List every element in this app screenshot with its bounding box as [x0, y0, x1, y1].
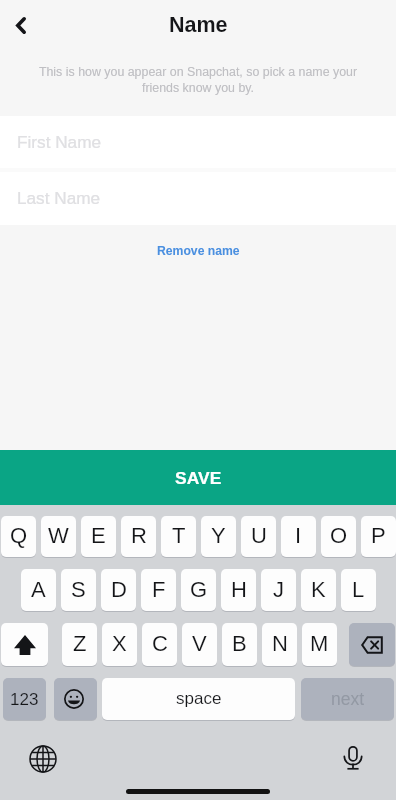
staticText: P — [371, 523, 386, 548]
staticText: J — [273, 577, 284, 602]
staticText: E — [91, 523, 106, 548]
button[interactable]: O — [321, 516, 356, 557]
button[interactable]: next — [301, 678, 394, 720]
staticText: H — [231, 577, 247, 602]
staticText: N — [272, 631, 288, 656]
button[interactable]: M — [302, 623, 337, 666]
button[interactable]: SAVE — [0, 450, 396, 505]
staticText: K — [311, 577, 326, 602]
button[interactable]: N — [262, 623, 297, 666]
button[interactable]: I — [281, 516, 316, 557]
staticText: space — [176, 689, 222, 708]
staticText: Y — [211, 523, 226, 548]
button[interactable]: R — [121, 516, 156, 557]
button[interactable]: Remove name — [157, 244, 240, 258]
button[interactable]: X — [102, 623, 137, 666]
button[interactable]: 123 — [3, 678, 46, 720]
button[interactable]: P — [361, 516, 396, 557]
button[interactable]: H — [221, 569, 256, 611]
staticText: A — [31, 577, 46, 602]
button[interactable]: Emoji — [54, 678, 97, 720]
staticText: M — [310, 631, 329, 656]
button[interactable]: Q — [1, 516, 36, 557]
button[interactable]: C — [142, 623, 177, 666]
staticText: T — [172, 523, 186, 548]
staticText: G — [190, 577, 208, 602]
staticText: F — [152, 577, 166, 602]
staticText: I — [295, 523, 302, 548]
button[interactable]: S — [61, 569, 96, 611]
button[interactable]: F — [141, 569, 176, 611]
staticText: Z — [73, 631, 87, 656]
button[interactable]: Back — [0, 3, 43, 47]
button[interactable]: L — [341, 569, 376, 611]
button[interactable]: Z — [62, 623, 97, 666]
staticText: V — [192, 631, 207, 656]
staticText: First Name — [17, 132, 102, 151]
button[interactable]: Backspace — [349, 623, 395, 666]
staticText: Last Name — [17, 188, 101, 207]
staticText: This is how you appear on Snapchat, so p… — [33, 65, 363, 94]
button[interactable]: E — [81, 516, 116, 557]
staticText: SAVE — [175, 468, 222, 487]
button[interactable]: space — [102, 678, 295, 720]
button[interactable]: B — [222, 623, 257, 666]
button[interactable]: A — [21, 569, 56, 611]
button[interactable]: Change keyboard — [26, 742, 60, 776]
button[interactable]: Dictation — [336, 741, 370, 775]
button[interactable]: J — [261, 569, 296, 611]
staticText: Name — [169, 13, 228, 37]
button[interactable]: Last Name — [0, 172, 396, 225]
staticText: B — [232, 631, 247, 656]
staticText: next — [331, 689, 365, 709]
staticText: 123 — [10, 690, 39, 709]
button[interactable]: Shift — [1, 623, 48, 666]
staticText: U — [251, 523, 267, 548]
staticText: L — [352, 577, 365, 602]
staticText: X — [112, 631, 127, 656]
button[interactable]: G — [181, 569, 216, 611]
button[interactable]: First Name — [0, 116, 396, 168]
staticText: W — [48, 523, 69, 548]
button[interactable]: W — [41, 516, 76, 557]
button[interactable]: D — [101, 569, 136, 611]
staticText: O — [330, 523, 348, 548]
button[interactable]: T — [161, 516, 196, 557]
staticText: Q — [10, 523, 28, 548]
button[interactable]: U — [241, 516, 276, 557]
staticText: Remove name — [157, 244, 240, 258]
button[interactable]: Y — [201, 516, 236, 557]
staticText: R — [131, 523, 147, 548]
button[interactable]: V — [182, 623, 217, 666]
staticText: S — [71, 577, 86, 602]
staticText: C — [152, 631, 168, 656]
staticText: D — [111, 577, 127, 602]
button[interactable]: K — [301, 569, 336, 611]
